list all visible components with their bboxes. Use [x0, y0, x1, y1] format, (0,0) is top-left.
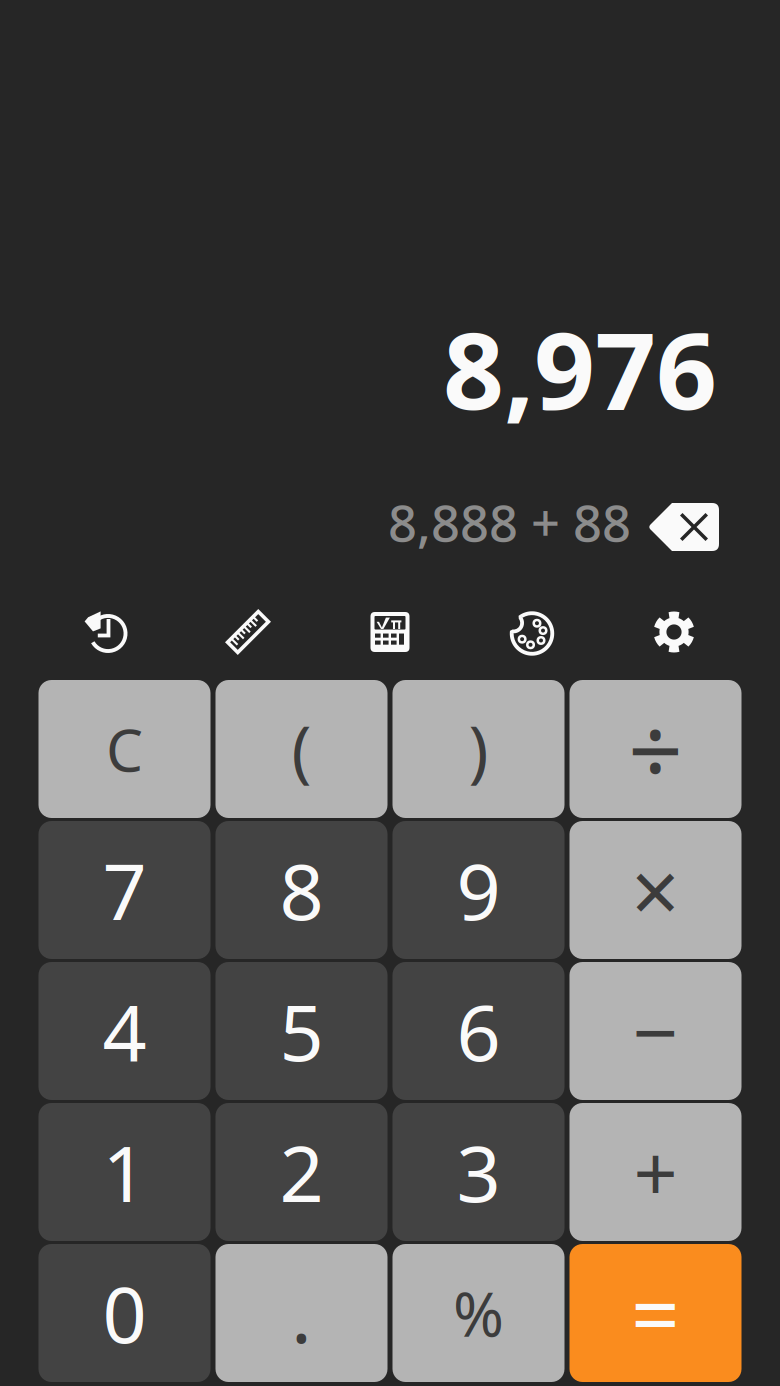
button[interactable]: =: [569, 1244, 741, 1382]
button[interactable]: Settings: [603, 597, 745, 661]
button[interactable]: Themes: [461, 597, 603, 661]
button[interactable]: 4: [38, 962, 210, 1100]
staticText: −: [632, 978, 678, 1084]
button[interactable]: C: [38, 680, 210, 818]
staticText: ÷: [628, 685, 683, 813]
button[interactable]: ÷: [569, 680, 741, 818]
button[interactable]: ×: [569, 821, 741, 959]
staticText: 1: [102, 1121, 146, 1223]
staticText: 8,976: [443, 297, 717, 439]
button[interactable]: 9: [392, 821, 564, 959]
button[interactable]: Unit converter: [177, 597, 319, 661]
button[interactable]: 2: [215, 1103, 387, 1241]
button[interactable]: Scientific calculator: [319, 597, 461, 661]
staticText: 9: [456, 839, 500, 941]
staticText: 8: [279, 839, 323, 941]
staticText: %: [453, 1272, 504, 1354]
button[interactable]: ): [392, 680, 564, 818]
button[interactable]: 3: [392, 1103, 564, 1241]
button[interactable]: 6: [392, 962, 564, 1100]
button[interactable]: History: [35, 597, 177, 661]
button[interactable]: 7: [38, 821, 210, 959]
staticText: 4: [102, 980, 146, 1082]
staticText: 2: [279, 1121, 323, 1223]
staticText: 7: [102, 839, 146, 941]
button[interactable]: .: [215, 1244, 387, 1382]
button[interactable]: +: [569, 1103, 741, 1241]
button[interactable]: Delete: [648, 493, 719, 551]
staticText: +: [633, 1121, 677, 1223]
staticText: C: [106, 710, 143, 788]
button[interactable]: 0: [38, 1244, 210, 1382]
staticText: 6: [456, 980, 500, 1082]
staticText: (: [291, 705, 311, 793]
staticText: 5: [279, 980, 323, 1082]
staticText: 0: [102, 1262, 146, 1364]
button[interactable]: 8: [215, 821, 387, 959]
staticText: ): [468, 705, 488, 793]
button[interactable]: (: [215, 680, 387, 818]
button[interactable]: −: [569, 962, 741, 1100]
staticText: 3: [456, 1121, 500, 1223]
staticText: 8,888 + 88: [388, 488, 631, 556]
button[interactable]: 1: [38, 1103, 210, 1241]
staticText: ×: [631, 833, 680, 947]
button[interactable]: 5: [215, 962, 387, 1100]
staticText: =: [631, 1256, 680, 1370]
button[interactable]: %: [392, 1244, 564, 1382]
staticText: .: [291, 1262, 312, 1364]
